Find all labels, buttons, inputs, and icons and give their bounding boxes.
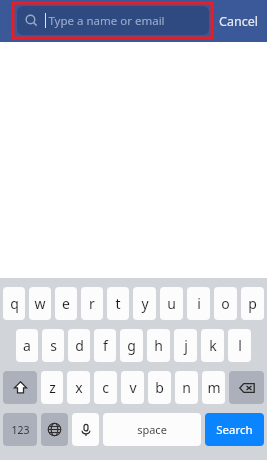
button[interactable]: k bbox=[201, 329, 224, 362]
button[interactable]: c bbox=[94, 371, 117, 404]
staticText: q bbox=[10, 294, 19, 313]
button[interactable]: h bbox=[147, 329, 170, 362]
staticText: c bbox=[102, 378, 109, 397]
staticText: l bbox=[238, 336, 242, 355]
staticText: j bbox=[184, 336, 188, 355]
button[interactable]: r bbox=[81, 287, 103, 320]
staticText: u bbox=[167, 294, 176, 313]
staticText: s bbox=[50, 336, 57, 355]
button[interactable]: b bbox=[148, 371, 171, 404]
staticText: k bbox=[209, 336, 217, 355]
button[interactable]: x bbox=[67, 371, 90, 404]
button[interactable]: y bbox=[133, 287, 156, 320]
staticText: d bbox=[75, 336, 84, 355]
button[interactable]: m bbox=[202, 371, 225, 404]
button[interactable]: o bbox=[214, 287, 237, 320]
button[interactable]: d bbox=[68, 329, 90, 362]
button[interactable]: j bbox=[174, 329, 197, 362]
staticText: space bbox=[137, 422, 167, 437]
button[interactable]: z bbox=[41, 371, 63, 404]
button[interactable]: s bbox=[42, 329, 64, 362]
staticText: y bbox=[141, 294, 149, 313]
button[interactable]: Shift bbox=[3, 371, 37, 404]
staticText: z bbox=[49, 378, 56, 397]
button[interactable]: a bbox=[16, 329, 38, 362]
button[interactable]: t bbox=[107, 287, 129, 320]
staticText: i bbox=[197, 294, 201, 313]
staticText: p bbox=[248, 294, 257, 313]
staticText: e bbox=[62, 294, 70, 313]
staticText: a bbox=[23, 336, 31, 355]
staticText: g bbox=[127, 336, 136, 355]
button[interactable]: v bbox=[121, 371, 144, 404]
button[interactable]: l bbox=[228, 329, 251, 362]
staticText: r bbox=[89, 294, 95, 313]
staticText: o bbox=[221, 294, 230, 313]
staticText: t bbox=[115, 294, 121, 313]
staticText: v bbox=[129, 378, 137, 397]
button[interactable]: n bbox=[175, 371, 198, 404]
staticText: Cancel bbox=[219, 13, 258, 30]
button[interactable]: 123 bbox=[3, 413, 37, 446]
staticText: Type a name or email bbox=[48, 13, 165, 29]
button[interactable]: i bbox=[187, 287, 210, 320]
staticText: n bbox=[182, 378, 191, 397]
button[interactable]: p bbox=[241, 287, 264, 320]
staticText: 123 bbox=[11, 423, 30, 437]
button[interactable]: g bbox=[120, 329, 143, 362]
staticText: f bbox=[103, 336, 108, 355]
button[interactable]: Search bbox=[205, 413, 264, 446]
button[interactable]: Dictate bbox=[72, 413, 99, 446]
button[interactable]: Cancel bbox=[210, 0, 267, 42]
button[interactable]: space bbox=[103, 413, 201, 446]
staticText: Search bbox=[216, 422, 253, 438]
button[interactable]: q bbox=[3, 287, 25, 320]
button[interactable]: Backspace bbox=[229, 371, 264, 404]
button[interactable]: f bbox=[94, 329, 116, 362]
button[interactable]: e bbox=[55, 287, 77, 320]
staticText: w bbox=[34, 294, 46, 313]
staticText: x bbox=[75, 378, 83, 397]
staticText: h bbox=[154, 336, 163, 355]
button[interactable]: w bbox=[29, 287, 51, 320]
staticText: b bbox=[155, 378, 164, 397]
button[interactable]: u bbox=[160, 287, 183, 320]
button[interactable]: Type a name or email bbox=[17, 6, 209, 35]
staticText: m bbox=[207, 378, 221, 397]
button[interactable]: Change keyboard bbox=[41, 413, 68, 446]
